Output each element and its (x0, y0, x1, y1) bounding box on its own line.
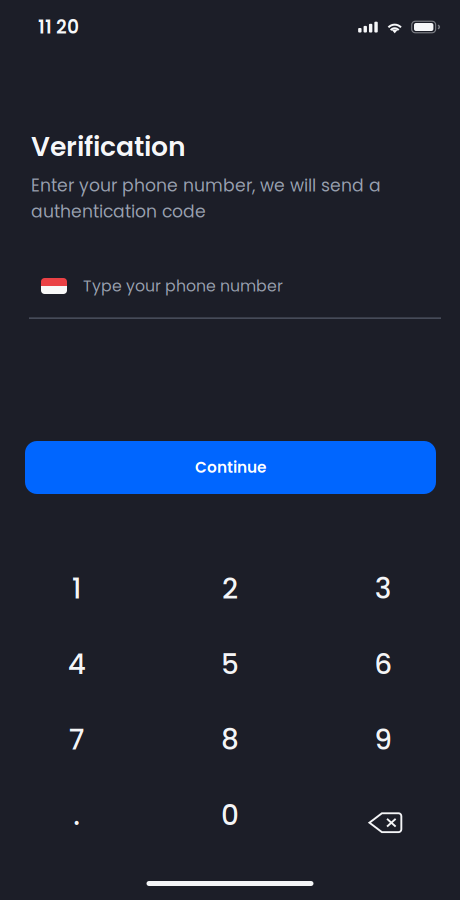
button[interactable]: . (0, 777, 153, 853)
button[interactable]: 6 (307, 626, 460, 702)
staticText: Enter your phone number, we will send a (31, 173, 381, 197)
staticText: 3 (375, 569, 392, 608)
button[interactable]: 9 (307, 702, 460, 777)
staticText: Continue (195, 457, 266, 478)
staticText: 6 (374, 645, 392, 684)
staticText: 8 (221, 720, 239, 759)
staticText: 9 (374, 720, 392, 759)
staticText: Verification (31, 128, 186, 165)
staticText: 7 (69, 720, 85, 759)
button[interactable]: Continue (25, 441, 436, 494)
button[interactable]: 4 (0, 626, 153, 702)
button[interactable]: 3 (307, 551, 460, 626)
button[interactable]: 7 (0, 702, 153, 777)
staticText: 2 (222, 569, 238, 608)
button[interactable]: 2 (153, 551, 307, 626)
staticText: . (73, 796, 80, 835)
staticText: authentication code (31, 199, 206, 223)
staticText: 0 (221, 796, 239, 835)
button[interactable]: 8 (153, 702, 307, 777)
button[interactable]: Delete (307, 777, 460, 853)
staticText: 1 (72, 569, 82, 608)
staticText: 11 20 (38, 14, 79, 40)
button[interactable]: 5 (153, 626, 307, 702)
staticText: Type your phone number (83, 275, 283, 297)
staticText: 5 (221, 645, 239, 684)
button[interactable]: 0 (153, 777, 307, 853)
staticText: 4 (68, 645, 86, 684)
button[interactable]: 1 (0, 551, 153, 626)
